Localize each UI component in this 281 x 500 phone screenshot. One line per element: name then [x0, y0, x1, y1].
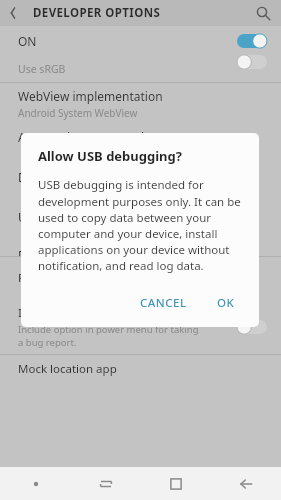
staticText: Use sRGB — [18, 62, 66, 76]
staticText: WebView implementation — [18, 88, 163, 104]
button[interactable]: ON — [0, 26, 281, 56]
button[interactable]: Toggle off — [237, 318, 267, 336]
button[interactable]: Toggle on — [237, 32, 267, 50]
staticText: Revoke USB debugging authorizations — [18, 270, 226, 286]
button[interactable]: Toggle off — [237, 53, 267, 71]
staticText: Automatic system updates — [18, 129, 168, 145]
staticText: USB debugging — [18, 209, 106, 225]
staticText: a bug report. — [18, 336, 77, 349]
button[interactable]: Back — [0, 0, 26, 26]
staticText: Include option in power menu for taking — [18, 323, 199, 336]
button[interactable]: OK — [209, 291, 243, 315]
staticText: Allow USB debugging? — [38, 147, 182, 165]
button[interactable]: Home — [141, 467, 211, 500]
button[interactable]: Use sRGB — [0, 56, 281, 82]
staticText: CANCEL — [140, 295, 187, 311]
button[interactable]: WebView implementation — [0, 83, 281, 125]
staticText: OK — [217, 295, 235, 311]
button[interactable]: Mock location app — [0, 355, 281, 467]
button[interactable]: Search — [251, 1, 275, 25]
button[interactable]: Recent apps — [71, 467, 141, 500]
staticText: Include bug reports in power me.. — [18, 305, 202, 321]
staticText: Android System WebView — [18, 106, 138, 120]
button[interactable]: Include bug reports in power me.. — [0, 299, 281, 354]
button[interactable]: Revoke USB debugging authorizations — [0, 257, 281, 299]
staticText: USB debugging is intended for developmen… — [38, 177, 243, 273]
staticText: Demo mode — [18, 169, 88, 185]
staticText: DEVELOPER OPTIONS — [33, 5, 161, 21]
staticText: ON — [18, 33, 37, 49]
staticText: Debug mode when USB — [18, 247, 152, 256]
staticText: Mock location app — [18, 361, 117, 377]
button[interactable]: Back — [211, 467, 281, 500]
button[interactable]: CANCEL — [132, 291, 195, 315]
